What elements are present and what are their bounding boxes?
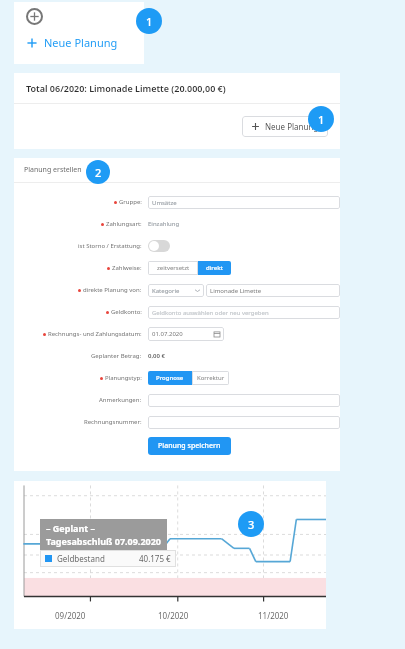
staticText: Einzahlung [148, 220, 180, 228]
staticText: Tagesabschluß 07.09.2020 [46, 535, 161, 547]
staticText: Limonade Limette [210, 287, 262, 295]
button[interactable]: Neue Planung [242, 116, 328, 137]
staticText: 10/2020 [158, 610, 189, 621]
staticText: Korrektur [197, 374, 225, 382]
button[interactable]: Hinzufügen [26, 8, 43, 25]
button[interactable]: zeitversetzt [148, 261, 198, 275]
button[interactable]: direkt [198, 261, 231, 275]
button[interactable]: 01.07.2020 [148, 327, 224, 341]
button[interactable]: Prognose [148, 371, 192, 385]
staticText: Geldkonto: [111, 308, 142, 316]
staticText: Geldbestand [57, 553, 105, 564]
staticText: – Geplant – [46, 522, 96, 534]
button[interactable]: Geldkonto auswählen oder neu vergeben [148, 306, 340, 319]
button[interactable]: Planung speichern [148, 437, 231, 455]
staticText: Zahlweise: [112, 264, 142, 272]
staticText: 1 [146, 14, 153, 29]
staticText: 1 [318, 112, 325, 127]
staticText: Zahlungsart: [106, 220, 142, 228]
staticText: Total 06/2020: Limonade Limette (20.000,… [26, 82, 226, 94]
staticText: Geldkonto auswählen oder neu vergeben [152, 309, 269, 317]
button[interactable]: Korrektur [192, 371, 229, 385]
button[interactable]: Kategorie [148, 284, 204, 297]
staticText: Neue Planung [265, 121, 319, 132]
staticText: 01.07.2020 [152, 330, 183, 338]
staticText: Neue Planung [44, 35, 118, 50]
button[interactable] [148, 394, 340, 407]
staticText: 09/2020 [55, 610, 86, 621]
staticText: Gruppe: [119, 198, 142, 206]
staticText: 2 [95, 165, 102, 180]
button[interactable]: Storno Schalter [148, 240, 170, 252]
staticText: 3 [248, 517, 255, 532]
button[interactable]: Neue Planung [26, 35, 118, 50]
staticText: Umsätze [152, 199, 177, 207]
staticText: Kategorie [152, 287, 180, 295]
button[interactable]: Limonade Limette [206, 284, 340, 297]
staticText: Rechnungsnummer: [84, 418, 142, 426]
staticText: direkt [206, 264, 223, 272]
staticText: 40.175 € [139, 553, 171, 564]
staticText: Rechnungs- und Zahlungsdatum: [48, 330, 142, 338]
staticText: Planungstyp: [105, 374, 142, 382]
button[interactable] [148, 416, 340, 429]
staticText: direkte Planung von: [83, 286, 142, 294]
staticText: zeitversetzt [157, 264, 190, 272]
button[interactable]: Umsätze [148, 196, 340, 209]
staticText: Planung speichern [158, 441, 221, 451]
staticText: 0,00 € [148, 352, 165, 360]
staticText: Anmerkungen: [99, 396, 142, 404]
staticText: Planung erstellen [24, 165, 82, 175]
staticText: ist Storno / Erstattung: [78, 242, 142, 250]
staticText: 11/2020 [258, 610, 289, 621]
staticText: Geplanter Betrag: [91, 352, 142, 360]
staticText: Prognose [156, 374, 184, 382]
